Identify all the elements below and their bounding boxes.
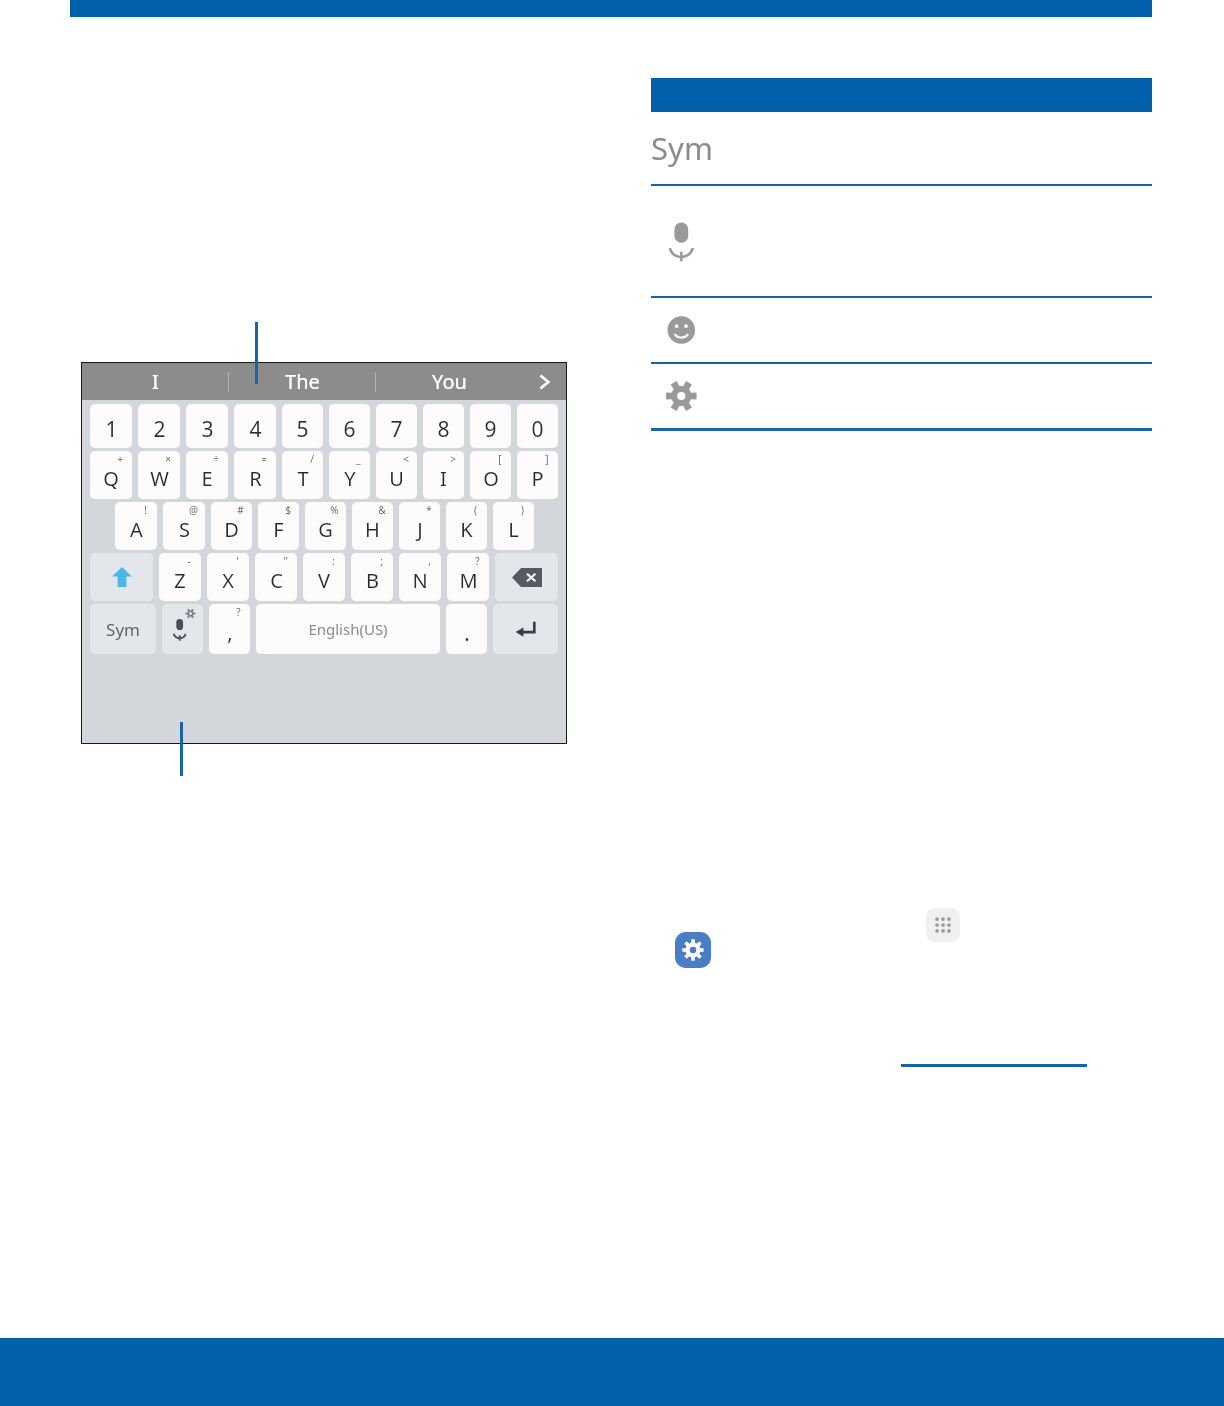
staticText: O: [483, 465, 499, 492]
staticText: 5: [296, 415, 309, 444]
button[interactable]: #: [211, 502, 252, 550]
staticText: 6: [343, 415, 356, 444]
staticText: F: [273, 516, 284, 543]
button[interactable]: Sym: [90, 604, 156, 654]
button[interactable]: =: [234, 451, 276, 499]
staticText: B: [366, 567, 379, 594]
button[interactable]: [: [470, 451, 511, 499]
button[interactable]: 0: [517, 404, 558, 448]
button[interactable]: 2: [138, 404, 180, 448]
staticText: @: [189, 503, 198, 517]
button[interactable]: %: [305, 502, 346, 550]
staticText: C: [270, 567, 283, 594]
staticText: 4: [249, 415, 262, 444]
staticText: The: [285, 368, 320, 395]
button[interactable]: ÷: [186, 451, 228, 499]
staticText: English(US): [308, 619, 388, 639]
staticText: <: [403, 452, 409, 466]
button[interactable]: English(US): [256, 604, 440, 654]
staticText: 0: [531, 415, 544, 444]
button[interactable]: 9: [470, 404, 511, 448]
button[interactable]: &: [352, 502, 393, 550]
button[interactable]: Enter: [493, 604, 558, 654]
staticText: -: [187, 554, 191, 568]
staticText: H: [365, 516, 380, 543]
staticText: S: [179, 516, 190, 543]
button[interactable]: Sym: [651, 112, 1152, 184]
staticText: M: [459, 567, 478, 594]
button[interactable]: 8: [423, 404, 464, 448]
button[interactable]: ?: [209, 604, 250, 654]
button[interactable]: 7: [376, 404, 417, 448]
button[interactable]: ): [493, 502, 534, 550]
staticText: X: [222, 567, 234, 594]
staticText: %: [330, 503, 339, 517]
staticText: K: [460, 516, 473, 543]
staticText: A: [130, 516, 143, 543]
button[interactable]: 1: [90, 404, 132, 448]
button[interactable]: >: [423, 451, 464, 499]
button[interactable]: 4: [234, 404, 276, 448]
staticText: E: [201, 465, 213, 492]
button[interactable]: /: [282, 451, 323, 499]
button[interactable]: More suggestions: [522, 363, 566, 400]
staticText: Sym: [651, 127, 713, 169]
button[interactable]: Voice input: [162, 604, 203, 654]
staticText: R: [249, 465, 262, 492]
button[interactable]: Settings: [675, 932, 711, 968]
staticText: J: [417, 516, 423, 543]
staticText: T: [297, 465, 309, 492]
staticText: 1: [105, 415, 118, 444]
button[interactable]: -: [159, 553, 201, 601]
button[interactable]: Backspace: [495, 553, 558, 601]
button[interactable]: Keyboard settings: [651, 364, 1152, 428]
staticText: You: [432, 368, 467, 395]
button[interactable]: Emoji: [651, 298, 1152, 362]
staticText: ': [236, 554, 239, 568]
staticText: P: [531, 465, 544, 492]
staticText: V: [318, 567, 330, 594]
button[interactable]: +: [90, 451, 132, 499]
button[interactable]: ': [207, 553, 249, 601]
button[interactable]: 3: [186, 404, 228, 448]
staticText: 9: [484, 415, 497, 444]
button[interactable]: !: [115, 502, 157, 550]
staticText: $: [285, 503, 291, 517]
staticText: U: [389, 465, 404, 492]
button[interactable]: @: [163, 502, 205, 550]
button[interactable]: 5: [282, 404, 323, 448]
button[interactable]: ": [255, 553, 297, 601]
button[interactable]: $: [258, 502, 299, 550]
button[interactable]: Voice input: [651, 186, 1152, 296]
staticText: ,: [227, 619, 233, 646]
staticText: ": [283, 554, 288, 568]
staticText: =: [261, 452, 267, 466]
button[interactable]: Apps: [926, 908, 960, 942]
staticText: [: [498, 452, 502, 466]
button[interactable]: (: [446, 502, 487, 550]
staticText: I: [152, 368, 159, 395]
staticText: ): [521, 503, 524, 517]
button[interactable]: You: [376, 363, 522, 400]
staticText: ?: [236, 605, 241, 619]
button[interactable]: :: [303, 553, 345, 601]
button[interactable]: <: [376, 451, 417, 499]
button[interactable]: 6: [329, 404, 370, 448]
button[interactable]: _: [329, 451, 370, 499]
button[interactable]: ×: [138, 451, 180, 499]
button[interactable]: *: [399, 502, 440, 550]
button[interactable]: Shift: [90, 553, 153, 601]
button[interactable]: ?: [447, 553, 489, 601]
button[interactable]: The: [229, 363, 375, 400]
staticText: _: [356, 452, 361, 466]
button[interactable]: ,: [399, 553, 441, 601]
staticText: +: [117, 452, 123, 466]
button[interactable]: ]: [517, 451, 558, 499]
button[interactable]: .: [446, 604, 487, 654]
staticText: 2: [153, 415, 166, 444]
button[interactable]: ;: [351, 553, 393, 601]
button[interactable]: I: [82, 363, 228, 400]
staticText: #: [237, 503, 244, 517]
staticText: 8: [437, 415, 450, 444]
staticText: D: [224, 516, 239, 543]
